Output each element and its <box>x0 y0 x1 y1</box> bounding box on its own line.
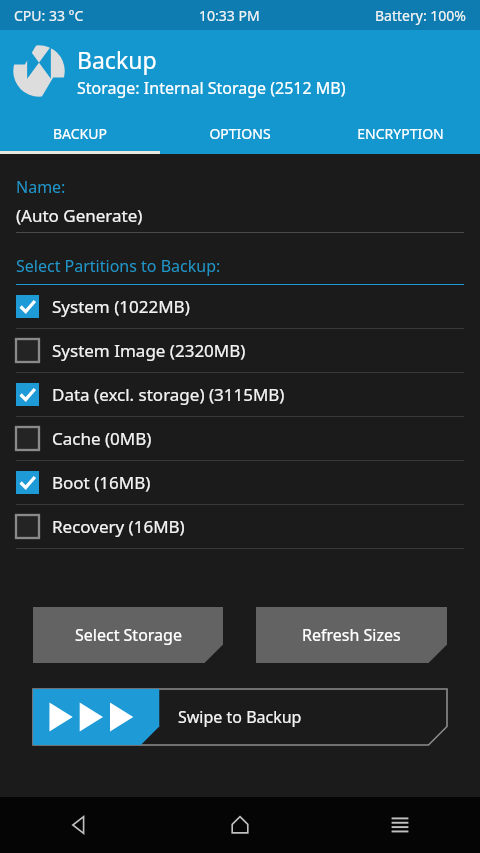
staticText: System Image (2320MB) <box>52 339 246 362</box>
button[interactable]: Back <box>0 797 160 853</box>
button[interactable]: Select Storage <box>33 607 223 663</box>
staticText: Storage: Internal Storage (2512 MB) <box>77 77 346 99</box>
button[interactable]: Menu <box>320 797 480 853</box>
staticText: Select Storage <box>75 624 182 646</box>
staticText: Data (excl. storage) (3115MB) <box>52 383 285 406</box>
staticText: CPU: 33 °C <box>14 6 84 25</box>
staticText: Boot (16MB) <box>52 471 151 494</box>
staticText: (Auto Generate) <box>16 204 143 227</box>
button[interactable]: ENCRYPTION <box>320 112 480 154</box>
staticText: Cache (0MB) <box>52 427 152 450</box>
button[interactable]: Swipe to Backup <box>33 689 447 745</box>
button[interactable]: Home <box>160 797 320 853</box>
staticText: Select Partitions to Backup: <box>16 255 221 277</box>
staticText: BACKUP <box>53 124 107 143</box>
staticText: Name: <box>16 176 66 198</box>
staticText: Refresh Sizes <box>302 624 401 646</box>
staticText: System (1022MB) <box>52 295 190 318</box>
staticText: ENCRYPTION <box>357 124 444 143</box>
button[interactable]: System Image (2320MB) <box>0 329 480 373</box>
button[interactable]: BACKUP <box>0 112 160 154</box>
button[interactable]: Recovery (16MB) <box>0 505 480 549</box>
staticText: OPTIONS <box>209 124 271 143</box>
staticText: Swipe to Backup <box>178 706 302 728</box>
staticText: 10:33 PM <box>199 6 260 25</box>
staticText: Recovery (16MB) <box>52 515 185 538</box>
button[interactable]: Data (excl. storage) (3115MB) <box>0 373 480 417</box>
button[interactable]: OPTIONS <box>160 112 320 154</box>
button[interactable]: Refresh Sizes <box>256 607 447 663</box>
staticText: Backup <box>77 44 157 75</box>
button[interactable]: (Auto Generate) <box>16 204 464 233</box>
staticText: Battery: 100% <box>375 6 466 25</box>
button[interactable]: System (1022MB) <box>0 285 480 329</box>
button[interactable]: Cache (0MB) <box>0 417 480 461</box>
button[interactable]: Boot (16MB) <box>0 461 480 505</box>
